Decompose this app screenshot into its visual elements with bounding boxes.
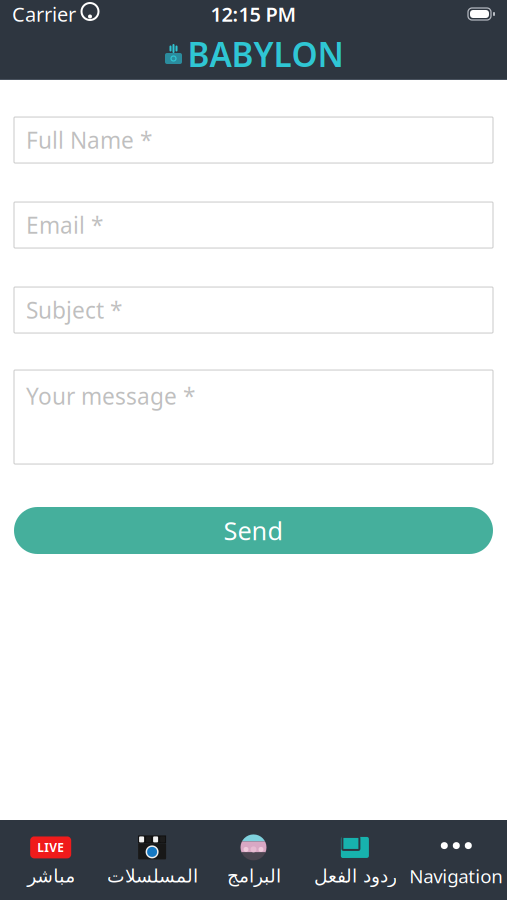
staticText: Carrier (12, 1, 76, 27)
staticText: مباشر (27, 865, 75, 887)
button[interactable]: Subject * (14, 287, 493, 333)
staticText: Navigation (409, 864, 503, 888)
button[interactable]: Full Name * (14, 117, 493, 163)
staticText: Send (223, 514, 283, 547)
staticText: Full Name * (26, 125, 152, 155)
button[interactable]: Email * (14, 202, 493, 248)
button[interactable]: البرامج (203, 823, 304, 897)
staticText: البرامج (226, 865, 280, 887)
staticText: Email * (26, 210, 103, 240)
staticText: BABYLON (187, 32, 343, 76)
staticText: المسلسلات (107, 865, 198, 887)
staticText: ردود الفعل (313, 865, 396, 887)
button[interactable]: المسلسلات (101, 823, 203, 897)
button[interactable]: Send (14, 507, 493, 554)
button[interactable]: Your message * (14, 370, 493, 464)
button[interactable]: Navigation (406, 823, 507, 897)
staticText: 12:15 PM (210, 1, 296, 27)
staticText: Your message * (26, 381, 195, 411)
staticText: Subject * (26, 295, 122, 325)
button[interactable]: ردود الفعل (304, 823, 406, 897)
button[interactable]: LIVE (0, 823, 101, 897)
staticText: LIVE (37, 839, 64, 855)
